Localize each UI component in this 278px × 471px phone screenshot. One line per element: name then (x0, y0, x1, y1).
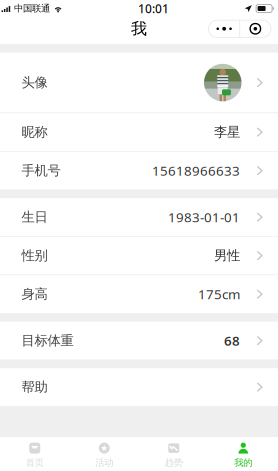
staticText: 头像 (21, 74, 47, 91)
button[interactable]: Close (240, 20, 271, 37)
button[interactable]: 性别 (0, 237, 278, 275)
staticText: 手机号 (21, 162, 60, 179)
button[interactable]: 帮助 (0, 368, 278, 406)
staticText: 身高 (21, 286, 47, 302)
staticText: 生日 (21, 209, 47, 225)
staticText: 目标体重 (21, 332, 73, 349)
button[interactable]: 手机号 (0, 152, 278, 190)
staticText: 15618966633 (152, 162, 240, 179)
button[interactable]: 头像 (0, 53, 278, 113)
staticText: 李星 (214, 124, 240, 140)
staticText: 首页 (26, 457, 44, 468)
staticText: 活动 (95, 457, 113, 468)
button[interactable]: 趋势 (139, 437, 208, 471)
staticText: 68 (224, 332, 240, 349)
staticText: 175cm (198, 285, 240, 303)
button[interactable]: 首页 (0, 437, 69, 471)
button[interactable]: 目标体重 (0, 322, 278, 360)
staticText: 趋势 (165, 457, 183, 468)
button[interactable]: 身高 (0, 275, 278, 313)
staticText: 1983-01-01 (168, 208, 240, 226)
button[interactable]: 昵称 (0, 113, 278, 151)
button[interactable]: 生日 (0, 198, 278, 236)
staticText: 男性 (214, 247, 240, 264)
staticText: 昵称 (21, 124, 47, 140)
staticText: 10:01 (138, 0, 169, 16)
staticText: 我的 (234, 457, 252, 468)
staticText: 性别 (21, 247, 47, 264)
button[interactable]: More (209, 20, 239, 37)
staticText: 我 (131, 19, 147, 39)
button[interactable]: 我的 (208, 437, 278, 471)
staticText: 中国联通 (14, 3, 50, 14)
button[interactable]: 活动 (69, 437, 139, 471)
staticText: 帮助 (21, 379, 47, 395)
